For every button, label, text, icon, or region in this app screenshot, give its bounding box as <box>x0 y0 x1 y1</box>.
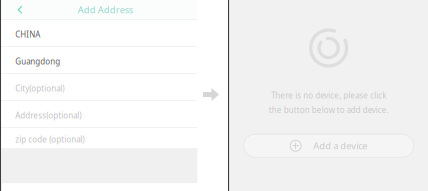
staticText: the button below to add device. <box>269 105 389 115</box>
staticText: zip code (optional) <box>15 134 84 145</box>
staticText: Add Address <box>78 4 133 16</box>
staticText: City(optional) <box>15 83 64 94</box>
button[interactable]: Add a device <box>244 134 414 157</box>
button[interactable]: Back <box>1 0 31 19</box>
button[interactable]: Guangdong <box>1 47 197 73</box>
staticText: Guangdong <box>15 56 60 67</box>
staticText: Address(optional) <box>15 110 81 121</box>
button[interactable]: zip code (optional) <box>1 128 197 148</box>
staticText: Add a device <box>313 140 367 152</box>
button[interactable]: Address(optional) <box>1 101 197 127</box>
button[interactable]: CHINA <box>1 20 197 46</box>
button[interactable]: City(optional) <box>1 74 197 100</box>
staticText: There is no device, please click <box>271 90 386 101</box>
staticText: CHINA <box>15 29 40 40</box>
